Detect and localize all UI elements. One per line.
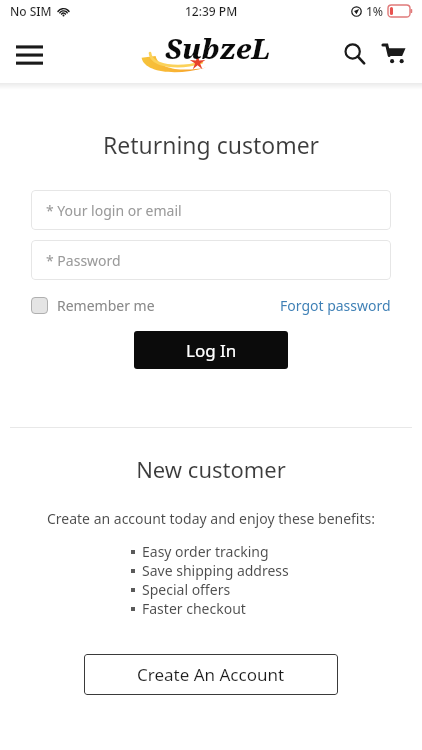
staticText: New customer [0, 454, 422, 484]
staticText: * Password [46, 251, 121, 270]
staticText: Easy order tracking [142, 542, 269, 561]
staticText: Create an account today and enjoy these … [0, 509, 422, 528]
staticText: 1% [366, 3, 384, 19]
staticText: * Your login or email [46, 201, 182, 220]
button[interactable]: Search [334, 33, 374, 73]
button[interactable]: Forgot password [280, 296, 391, 315]
staticText: Returning customer [0, 129, 422, 160]
staticText: Faster checkout [142, 599, 246, 618]
staticText: Create An Account [137, 663, 285, 686]
button[interactable]: Remember me [31, 296, 155, 315]
staticText: Remember me [57, 296, 155, 315]
button[interactable]: Log In [134, 331, 288, 369]
staticText: No SIM [10, 3, 52, 19]
button[interactable]: Create An Account [84, 654, 338, 695]
button[interactable]: Cart [374, 33, 414, 73]
button[interactable]: * Password [31, 240, 391, 280]
staticText: Log In [186, 339, 237, 362]
staticText: Save shipping address [142, 561, 289, 580]
button[interactable]: * Your login or email [31, 190, 391, 230]
button[interactable]: SubzeL home [136, 29, 276, 77]
staticText: Special offers [142, 580, 231, 599]
button[interactable]: Menu [8, 32, 50, 74]
staticText: SubzeL [165, 29, 271, 67]
staticText: 12:39 PM [185, 3, 238, 19]
